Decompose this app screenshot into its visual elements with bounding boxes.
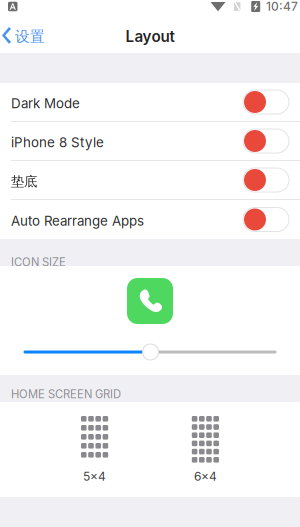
button[interactable]: 5x4 [81,416,108,483]
button[interactable]: 6x4 [192,416,219,483]
staticText: HOME SCREEN GRID [11,387,121,401]
button[interactable]: Dark Mode [0,83,300,122]
staticText: 5x4 [83,469,106,483]
staticText: iPhone 8 Style [11,134,104,150]
button[interactable]: Auto Rearrange Apps [0,200,300,239]
button[interactable]: iPhone 8 Style [0,122,300,161]
staticText: 6x4 [194,469,217,483]
staticText: Layout [125,27,174,46]
staticText: Dark Mode [11,95,80,111]
staticText: 垫底 [11,173,37,190]
button[interactable]: 垫底 [0,161,300,200]
button[interactable]: 设置 [0,18,53,52]
staticText: 10:47 [266,0,298,14]
staticText: Auto Rearrange Apps [11,213,144,229]
staticText: 设置 [15,27,45,46]
staticText: ICON SIZE [11,255,66,269]
